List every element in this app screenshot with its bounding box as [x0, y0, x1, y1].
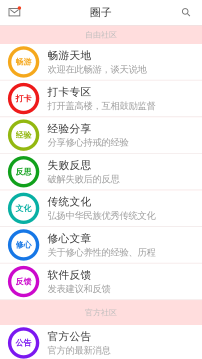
staticText: 破解失败后的反思	[48, 173, 120, 185]
button[interactable]: 反思	[0, 154, 202, 190]
staticText: 失败反思	[48, 159, 92, 172]
button[interactable]: 修心	[0, 227, 202, 264]
staticText: 畅游天地	[48, 49, 92, 62]
staticText: 文化	[16, 203, 32, 213]
staticText: 传统文化	[48, 195, 92, 208]
button[interactable]: 经验	[0, 117, 202, 154]
staticText: 弘扬中华民族优秀传统文化	[48, 210, 156, 221]
staticText: 打开盖高楼，互相鼓励监督	[48, 100, 156, 112]
staticText: 公告	[16, 338, 32, 348]
staticText: 经验	[16, 130, 32, 140]
staticText: 自由社区	[85, 30, 117, 40]
button[interactable]: 文化	[0, 190, 202, 227]
staticText: 经验分享	[48, 122, 92, 135]
staticText: 关于修心养性的经验、历程	[48, 247, 156, 258]
staticText: 打卡	[16, 94, 32, 103]
staticText: 反思	[16, 167, 32, 177]
button[interactable]: 打卡	[0, 81, 202, 117]
staticText: 软件反馈	[48, 268, 92, 282]
staticText: 发表建议和反馈	[48, 283, 111, 295]
staticText: 欢迎在此畅游，谈天说地	[48, 64, 147, 75]
staticText: 修心文章	[48, 232, 92, 245]
staticText: 修心	[16, 240, 32, 250]
button[interactable]: 反馈	[0, 264, 202, 300]
staticText: 分享修心持戒的经验	[48, 137, 129, 148]
button[interactable]: 搜索	[181, 0, 202, 25]
button[interactable]: 公告	[0, 325, 202, 359]
staticText: 打卡专区	[48, 85, 92, 99]
button[interactable]: 畅游	[0, 44, 202, 81]
staticText: 官方的最新消息	[48, 345, 111, 356]
staticText: 圈子	[90, 6, 112, 19]
staticText: 官方公告	[48, 330, 92, 343]
staticText: 畅游	[16, 57, 32, 67]
staticText: 官方社区	[85, 308, 117, 317]
button[interactable]: 消息	[0, 0, 21, 24]
staticText: 反馈	[16, 277, 32, 286]
